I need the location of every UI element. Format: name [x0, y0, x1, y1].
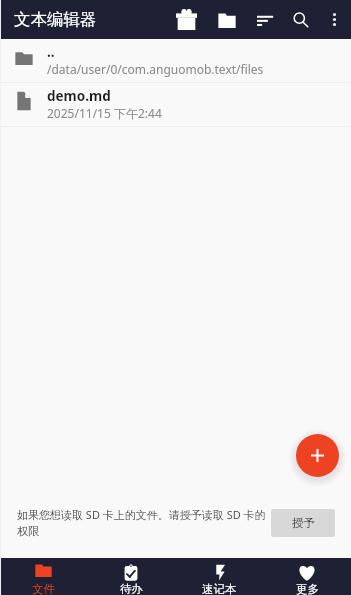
staticText: 文件 [32, 582, 55, 595]
staticText: 速记本 [202, 582, 237, 595]
button[interactable]: Open folder [210, 2, 244, 37]
staticText: /data/user/0/com.anguomob.text/files [47, 61, 264, 77]
button[interactable]: Add new file [296, 434, 339, 477]
staticText: 待办 [120, 582, 143, 595]
staticText: 授予 [292, 516, 315, 530]
button[interactable]: 更多 [263, 558, 351, 595]
staticText: 文本编辑器 [14, 9, 97, 30]
staticText: demo.md [47, 87, 111, 105]
button[interactable]: Search [283, 2, 317, 37]
button[interactable]: Sort [248, 2, 282, 37]
button[interactable]: 授予 [271, 509, 335, 537]
button[interactable]: 待办 [87, 558, 175, 595]
staticText: 更多 [296, 582, 319, 595]
staticText: 如果您想读取 SD 卡上的文件。请授予读取 SD 卡的权限 [17, 507, 269, 538]
button[interactable]: Gift [169, 2, 203, 37]
button[interactable]: More options [317, 2, 351, 37]
staticText: 2025/11/15 下午2:44 [47, 105, 162, 121]
button[interactable]: 速记本 [175, 558, 263, 595]
staticText: .. [47, 43, 55, 61]
button[interactable]: .. [0, 39, 351, 82]
button[interactable]: demo.md [0, 83, 351, 126]
button[interactable]: 文件 [0, 558, 87, 595]
